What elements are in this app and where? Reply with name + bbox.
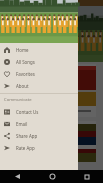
button[interactable]: Rate App bbox=[0, 142, 78, 154]
staticText: Rate App bbox=[16, 145, 35, 151]
button[interactable]: Home bbox=[46, 170, 59, 183]
button[interactable]: Back bbox=[11, 170, 24, 183]
button[interactable]: Email bbox=[0, 118, 78, 130]
staticText: Favorites bbox=[16, 71, 35, 77]
staticText: Home bbox=[16, 47, 29, 53]
button[interactable]: Home bbox=[0, 44, 78, 56]
button[interactable]: About bbox=[0, 80, 78, 92]
staticText: All Songs bbox=[16, 59, 35, 65]
button[interactable]: Recents bbox=[80, 170, 93, 183]
staticText: Share App bbox=[16, 133, 38, 139]
staticText: Contact Us bbox=[16, 109, 39, 115]
staticText: Communicate bbox=[4, 97, 32, 103]
button[interactable]: Share App bbox=[0, 130, 78, 142]
button[interactable]: All Songs bbox=[0, 56, 78, 68]
button[interactable]: Contact Us bbox=[0, 106, 78, 118]
button[interactable]: Favorites bbox=[0, 68, 78, 80]
staticText: Email bbox=[16, 121, 28, 127]
staticText: About bbox=[16, 83, 29, 89]
